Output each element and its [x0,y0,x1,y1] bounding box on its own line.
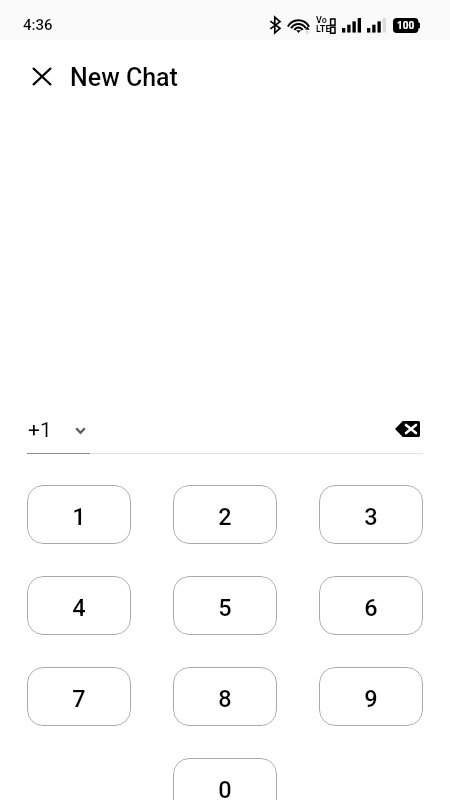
button[interactable]: 7 [27,667,131,726]
staticText: 1 [72,503,86,531]
staticText: 7 [72,685,86,713]
button[interactable]: 9 [319,667,423,726]
button[interactable]: 3 [319,485,423,544]
button[interactable]: 6 [319,576,423,635]
button[interactable]: Backspace [392,414,422,443]
button[interactable]: 2 [173,485,277,544]
staticText: New Chat [70,63,178,92]
staticText: +1 [28,418,52,443]
button[interactable]: +1 [28,418,86,443]
staticText: 4:36 [23,16,53,34]
staticText: 100 [397,20,415,32]
staticText: 6 [364,594,378,622]
staticText: 4 [72,594,86,622]
staticText: Vo [316,15,327,26]
staticText: LTE [316,24,331,35]
staticText: 8 [218,685,232,713]
button[interactable]: 4 [27,576,131,635]
staticText: 2 [218,503,232,531]
staticText: 3 [364,503,378,531]
staticText: 9 [364,685,378,713]
button[interactable]: 1 [27,485,131,544]
button[interactable]: 0 [173,758,277,800]
button[interactable]: Close [21,55,63,97]
staticText: 5 [218,594,232,622]
staticText: 0 [218,776,232,800]
button[interactable]: 8 [173,667,277,726]
button[interactable]: 5 [173,576,277,635]
